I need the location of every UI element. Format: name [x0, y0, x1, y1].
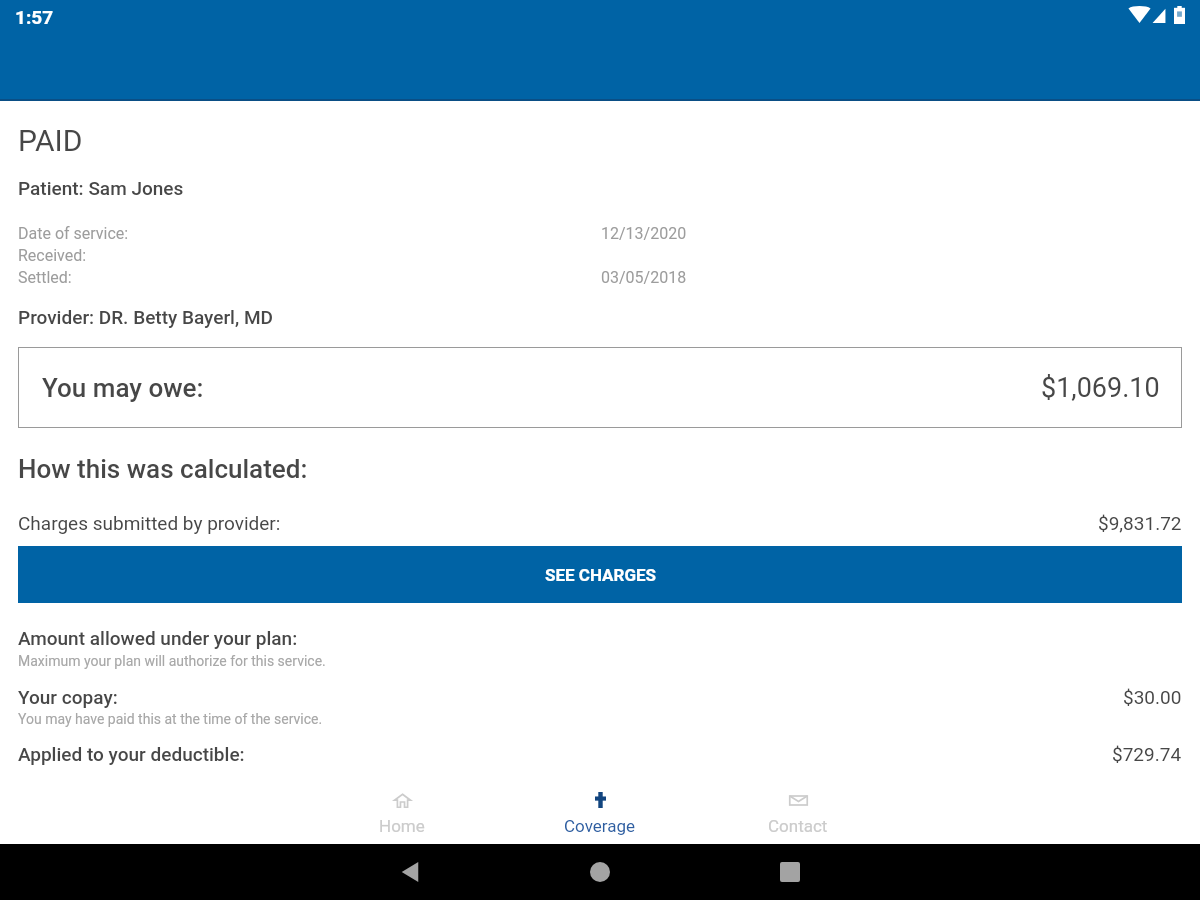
button[interactable]: Recents [695, 844, 885, 900]
staticText: PAID [18, 123, 83, 158]
button[interactable]: Contact [699, 786, 897, 844]
staticText: Your copay: [18, 686, 118, 708]
staticText: SEE CHARGES [545, 565, 656, 585]
staticText: Contact [768, 816, 828, 836]
staticText: 12/13/2020 [601, 224, 687, 243]
staticText: You may owe: [42, 373, 204, 403]
staticText: $729.74 [1112, 743, 1182, 765]
staticText: Maximum your plan will authorize for thi… [18, 653, 326, 669]
staticText: Charges submitted by provider: [18, 512, 281, 534]
staticText: Patient: Sam Jones [18, 177, 184, 199]
staticText: Settled: [18, 268, 72, 287]
staticText: $9,831.72 [1098, 512, 1182, 534]
button[interactable]: Home [303, 786, 501, 844]
staticText: Date of service: [18, 224, 129, 243]
staticText: Applied to your deductible: [18, 743, 245, 765]
staticText: You may have paid this at the time of th… [18, 711, 323, 727]
staticText: Received: [18, 246, 87, 265]
button[interactable]: Back [315, 844, 505, 900]
staticText: How this was calculated: [18, 454, 308, 484]
staticText: Provider: DR. Betty Bayerl, MD [18, 306, 273, 328]
staticText: 03/05/2018 [601, 268, 687, 287]
staticText: Coverage [564, 816, 636, 836]
button[interactable]: You may owe: [18, 347, 1182, 428]
staticText: $30.00 [1123, 686, 1182, 708]
button[interactable]: Coverage [501, 786, 699, 844]
staticText: Home [379, 816, 425, 836]
staticText: 1:57 [15, 6, 54, 28]
staticText: Amount allowed under your plan: [18, 627, 298, 649]
button[interactable]: Home [505, 844, 695, 900]
staticText: $1,069.10 [1041, 372, 1160, 404]
button[interactable]: SEE CHARGES [18, 546, 1182, 603]
